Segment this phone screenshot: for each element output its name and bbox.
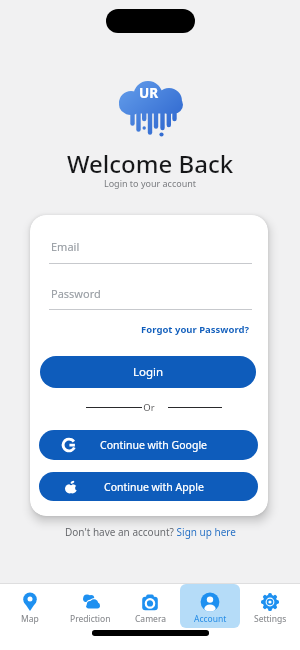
staticText: Account [194, 613, 227, 625]
staticText: Settings [254, 613, 287, 625]
staticText: Continue with Apple [104, 480, 204, 494]
staticText: Welcome Back [0, 147, 300, 180]
button[interactable]: Login [40, 356, 256, 388]
staticText: Or [30, 401, 268, 414]
staticText: Login [133, 364, 164, 380]
staticText: Map [21, 613, 39, 625]
button[interactable]: Map [0, 584, 60, 628]
button[interactable]: Account [180, 584, 240, 628]
button[interactable]: Forgot your Password? [140, 323, 249, 337]
staticText: Prediction [70, 613, 111, 625]
button[interactable]: Continue with Google [39, 430, 258, 460]
staticText: Forgot your Password? [140, 323, 249, 336]
staticText: Don't have an account? Sign up here [65, 525, 236, 539]
staticText: Email [51, 239, 80, 254]
button[interactable]: Prediction [60, 584, 120, 628]
button[interactable]: Continue with Apple [39, 472, 258, 501]
staticText: Camera [135, 613, 166, 625]
button[interactable]: Password [49, 286, 252, 310]
button[interactable]: Email [49, 237, 252, 264]
staticText: Login to your account [0, 177, 300, 189]
staticText: Continue with Google [100, 438, 208, 452]
staticText: Password [51, 286, 101, 301]
button[interactable]: Settings [240, 584, 300, 628]
button[interactable]: Camera [120, 584, 180, 628]
staticText: UR [134, 84, 163, 102]
button[interactable]: Don't have an account? Sign up here [0, 525, 300, 539]
